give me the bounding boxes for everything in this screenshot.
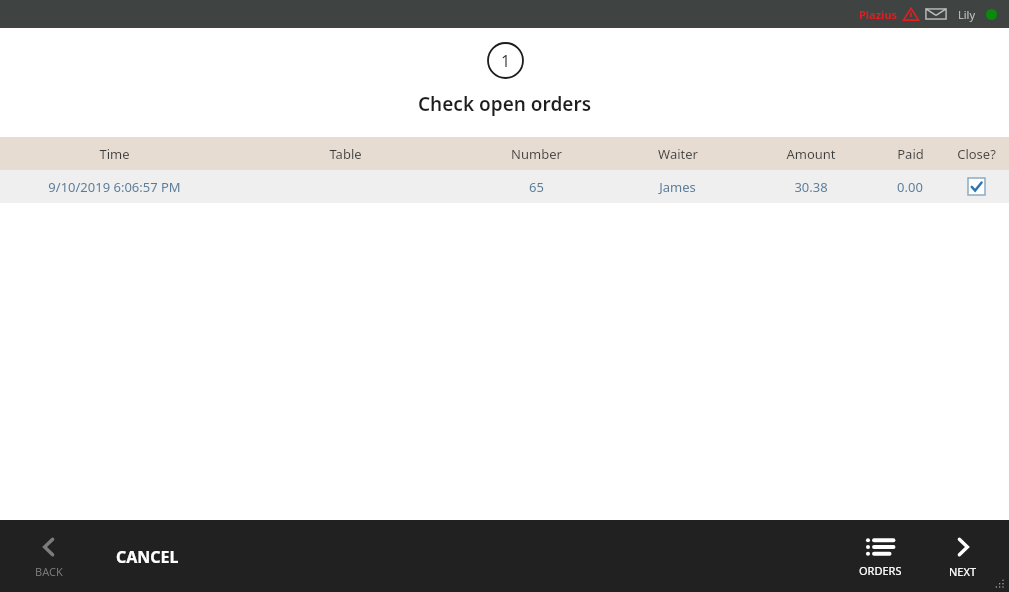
staticText: Close?	[957, 145, 996, 163]
staticText: Number	[511, 145, 562, 163]
staticText: 65	[529, 178, 544, 196]
staticText: 30.38	[794, 178, 828, 196]
staticText: Lily	[958, 7, 976, 22]
staticText: Waiter	[658, 145, 698, 163]
button[interactable]: Status online	[986, 9, 997, 20]
staticText: James	[659, 178, 696, 196]
staticText: Plazius	[859, 7, 898, 22]
staticText: Time	[99, 145, 130, 163]
button[interactable]: 9/10/2019 6:06:57 PM	[0, 170, 1009, 203]
button[interactable]: Close order checkbox	[968, 178, 985, 195]
staticText: 0.00	[897, 178, 923, 196]
staticText: Amount	[786, 145, 836, 163]
button[interactable]: Warning	[902, 5, 920, 23]
staticText: CANCEL	[116, 546, 179, 568]
staticText: Check open orders	[418, 91, 592, 117]
staticText: ORDERS	[859, 563, 902, 578]
staticText: NEXT	[949, 564, 977, 579]
staticText: BACK	[35, 564, 63, 579]
staticText: 9/10/2019 6:06:57 PM	[48, 178, 181, 196]
staticText: Paid	[897, 145, 924, 163]
button[interactable]: CANCEL	[98, 532, 197, 582]
button[interactable]: ORDERS	[837, 529, 923, 584]
staticText: 1	[501, 50, 511, 72]
button[interactable]: Messages	[924, 5, 948, 23]
button[interactable]: NEXT	[923, 528, 1003, 585]
staticText: Table	[329, 145, 362, 163]
button[interactable]: BACK	[0, 528, 98, 585]
